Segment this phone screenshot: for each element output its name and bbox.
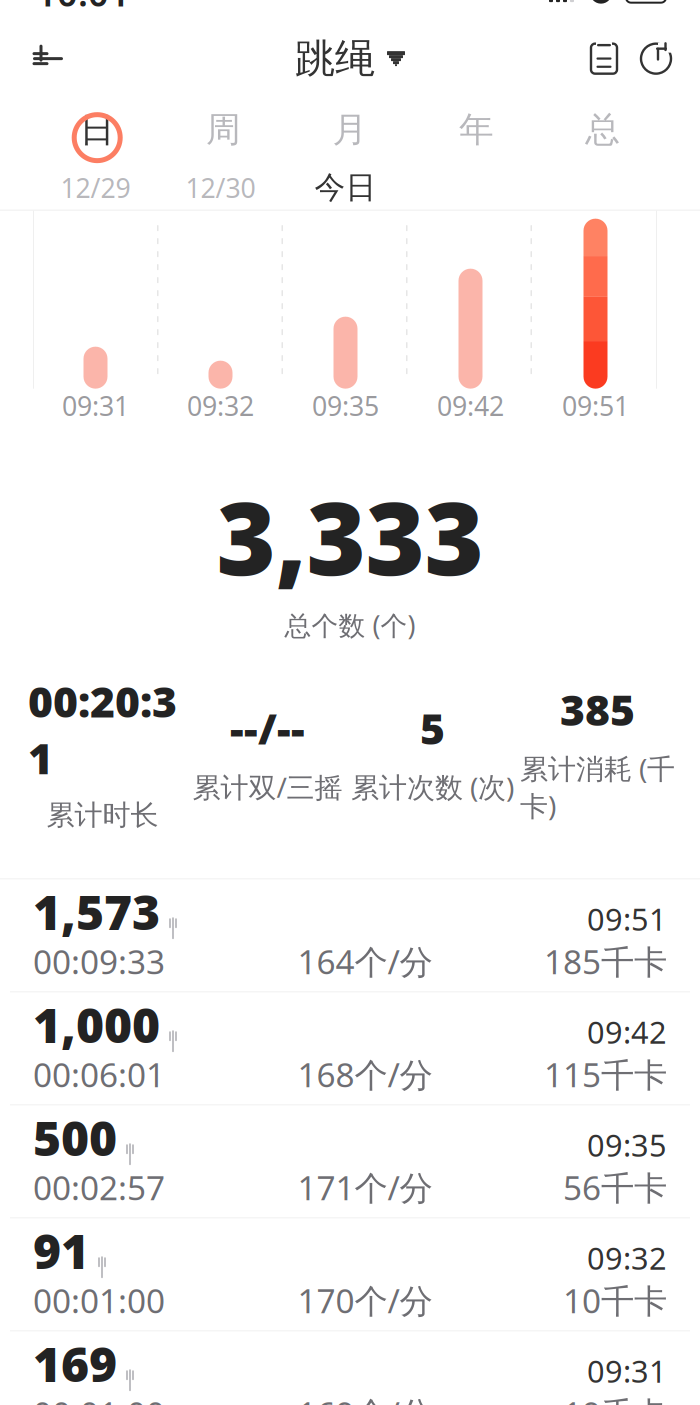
staticText: 00:06:01: [33, 1052, 165, 1096]
staticText: 年: [459, 108, 494, 151]
staticText: 09:32: [587, 1237, 667, 1278]
staticText: 累计双/三摇: [192, 768, 342, 805]
staticText: 19千卡: [563, 1391, 667, 1405]
staticText: 00:09:33: [33, 939, 165, 983]
staticText: 00:01:00: [33, 1278, 165, 1322]
staticText: 185千卡: [544, 939, 667, 983]
staticText: 170个/分: [297, 1278, 432, 1322]
staticText: 00:02:57: [33, 1165, 165, 1209]
button[interactable]: 500: [0, 1105, 700, 1217]
staticText: 09:32: [187, 388, 254, 423]
button[interactable]: 91: [0, 1218, 700, 1330]
staticText: 09:31: [62, 388, 129, 423]
staticText: 日: [80, 108, 115, 151]
button[interactable]: 总: [540, 97, 666, 163]
button[interactable]: 选择运动项目: [285, 31, 415, 87]
staticText: 周: [206, 108, 241, 151]
staticText: 跳绳: [295, 34, 375, 83]
button[interactable]: 周: [160, 97, 287, 163]
staticText: 09:31: [587, 1350, 667, 1391]
staticText: 1,573: [33, 879, 160, 943]
staticText: 115千卡: [544, 1052, 667, 1096]
staticText: 累计时长: [46, 798, 158, 832]
staticText: 00:20:31: [28, 673, 177, 786]
button[interactable]: 12/29: [33, 169, 158, 207]
staticText: 12/29: [60, 170, 130, 205]
staticText: 09:42: [587, 1011, 667, 1052]
staticText: 5: [420, 700, 445, 756]
staticText: 总: [585, 108, 620, 151]
button[interactable]: 169: [0, 1331, 700, 1405]
staticText: 09:51: [587, 898, 667, 939]
staticText: 09:51: [562, 388, 629, 423]
button[interactable]: 返回: [20, 31, 76, 87]
button[interactable]: 月: [287, 97, 413, 163]
button[interactable]: 1,000: [0, 992, 700, 1104]
staticText: 10千卡: [563, 1278, 667, 1322]
button[interactable]: 年: [413, 97, 540, 163]
button[interactable]: 日: [34, 97, 160, 163]
staticText: 12/30: [185, 170, 255, 205]
staticText: 500: [33, 1105, 117, 1169]
staticText: 09:35: [587, 1124, 667, 1165]
staticText: 总个数 (个): [284, 607, 415, 643]
staticText: 169: [33, 1331, 117, 1395]
staticText: --/--: [230, 700, 305, 756]
staticText: 1,000: [33, 992, 160, 1056]
staticText: 168个/分: [297, 1052, 432, 1096]
staticText: 169个/分: [297, 1391, 432, 1405]
staticText: 累计次数 (次): [351, 768, 514, 805]
staticText: 56千卡: [563, 1165, 667, 1209]
staticText: 3,333: [216, 469, 483, 603]
staticText: 累计消耗 (千卡): [520, 750, 675, 824]
staticText: 91: [33, 1218, 89, 1282]
staticText: 171个/分: [297, 1165, 432, 1209]
button[interactable]: 今日: [283, 169, 408, 207]
staticText: 00:01:00: [33, 1391, 165, 1405]
staticText: 10:01: [36, 0, 130, 17]
button[interactable]: 分享: [630, 31, 682, 87]
staticText: 09:35: [312, 388, 379, 423]
staticText: 164个/分: [297, 939, 432, 983]
staticText: 今日: [314, 169, 376, 206]
staticText: 09:42: [437, 388, 504, 423]
button[interactable]: 12/30: [158, 169, 283, 207]
staticText: 385: [560, 681, 635, 738]
button[interactable]: 记录: [578, 31, 630, 87]
staticText: 月: [332, 108, 367, 151]
button[interactable]: 1,573: [0, 879, 700, 991]
